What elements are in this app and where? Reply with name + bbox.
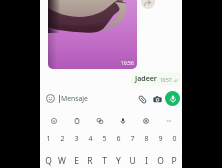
button[interactable]: 3	[69, 132, 83, 146]
button[interactable]: 2	[55, 132, 69, 146]
button[interactable]: 10:56	[48, 0, 137, 69]
staticText: T	[102, 155, 107, 167]
button[interactable]: Camera	[150, 92, 164, 106]
button[interactable]: 5	[97, 132, 111, 146]
button[interactable]: Settings	[140, 115, 151, 126]
button[interactable]: 1	[41, 132, 55, 146]
staticText: 10:57	[160, 77, 172, 83]
staticText: W	[58, 155, 66, 167]
button[interactable]: W	[55, 153, 69, 168]
button[interactable]: Mensaje	[44, 89, 135, 108]
button[interactable]: 0	[167, 132, 181, 146]
button[interactable]: T	[97, 153, 111, 168]
staticText: 3	[74, 134, 79, 144]
button[interactable]: Jadeer	[131, 72, 181, 86]
staticText: Mensaje	[61, 94, 88, 103]
staticText: 10:56	[121, 60, 134, 67]
staticText: 5	[102, 134, 107, 144]
button[interactable]: Q	[41, 153, 55, 168]
button[interactable]: Y	[111, 153, 125, 168]
button[interactable]: Emoji	[48, 115, 59, 126]
staticText: I	[145, 155, 148, 167]
button[interactable]: P	[167, 153, 181, 168]
button[interactable]: 6	[111, 132, 125, 146]
button[interactable]: U	[125, 153, 139, 168]
staticText: 9	[158, 134, 163, 144]
staticText: 6	[116, 134, 121, 144]
staticText: 1	[46, 134, 51, 144]
button[interactable]: I	[139, 153, 153, 168]
staticText: 8	[144, 134, 149, 144]
button[interactable]: Clipboard	[71, 115, 82, 126]
staticText: 2	[60, 134, 65, 144]
button[interactable]: 4	[83, 132, 97, 146]
button[interactable]: Voice input	[117, 115, 128, 126]
button[interactable]: 9	[153, 132, 167, 146]
button[interactable]: E	[69, 153, 83, 168]
staticText: R	[87, 155, 93, 167]
button[interactable]: Translate	[94, 115, 105, 126]
button[interactable]: More	[163, 115, 174, 126]
staticText: 0	[172, 134, 177, 144]
staticText: O	[157, 155, 164, 167]
button[interactable]: Voice message	[165, 91, 180, 106]
button[interactable]: 8	[139, 132, 153, 146]
staticText: P	[171, 155, 177, 167]
staticText: Y	[116, 155, 121, 167]
button[interactable]: R	[83, 153, 97, 168]
button[interactable]: Attach	[135, 92, 149, 106]
staticText: U	[129, 155, 136, 167]
staticText: E	[74, 155, 79, 167]
button[interactable]: O	[153, 153, 167, 168]
staticText: Jadeer	[135, 74, 157, 84]
staticText: Q	[45, 155, 52, 167]
staticText: 4	[88, 134, 93, 144]
button[interactable]: 7	[125, 132, 139, 146]
button[interactable]: Forward	[141, 0, 155, 9]
staticText: 7	[130, 134, 135, 144]
